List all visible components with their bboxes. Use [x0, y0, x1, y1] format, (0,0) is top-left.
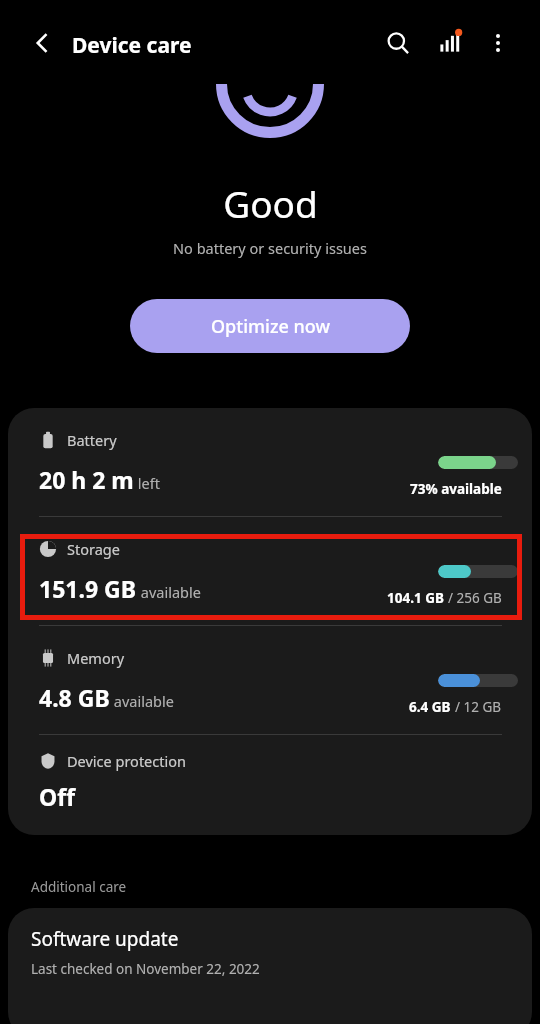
button[interactable]: Battery [8, 408, 532, 516]
staticText: Software update [31, 926, 179, 952]
staticText: No battery or security issues [173, 238, 367, 258]
button[interactable]: Usage statistics [430, 22, 472, 64]
button[interactable]: Device protection [8, 735, 532, 827]
staticText: 104.1 GB [387, 589, 448, 607]
staticText: Additional care [31, 878, 127, 896]
button[interactable]: More options [477, 22, 519, 64]
button[interactable]: Storage [8, 517, 532, 625]
staticText: Device care [72, 31, 192, 60]
staticText: / 12 GB [455, 698, 502, 716]
button[interactable]: Optimize now [130, 299, 410, 353]
staticText: available [137, 582, 201, 602]
staticText: Device protection [67, 751, 186, 771]
staticText: Battery [67, 430, 117, 450]
staticText: left [134, 473, 160, 493]
staticText: 6.4 GB [409, 698, 455, 716]
staticText: Optimize now [211, 314, 330, 339]
staticText: / 256 GB [448, 589, 502, 607]
staticText: Off [39, 781, 75, 812]
staticText: Good [223, 178, 318, 228]
button[interactable]: Search [377, 22, 419, 64]
staticText: 73% available [410, 480, 502, 498]
staticText: available [110, 691, 174, 711]
staticText: Memory [67, 648, 125, 668]
staticText: Storage [67, 539, 120, 559]
button[interactable]: Memory [8, 626, 532, 734]
button[interactable]: Software update [8, 908, 532, 1024]
staticText: 4.8 GB [39, 682, 110, 713]
staticText: Last checked on November 22, 2022 [31, 960, 260, 978]
button[interactable]: Back [22, 22, 64, 64]
staticText: 151.9 GB [39, 573, 137, 604]
staticText: 20 h 2 m [39, 464, 134, 495]
